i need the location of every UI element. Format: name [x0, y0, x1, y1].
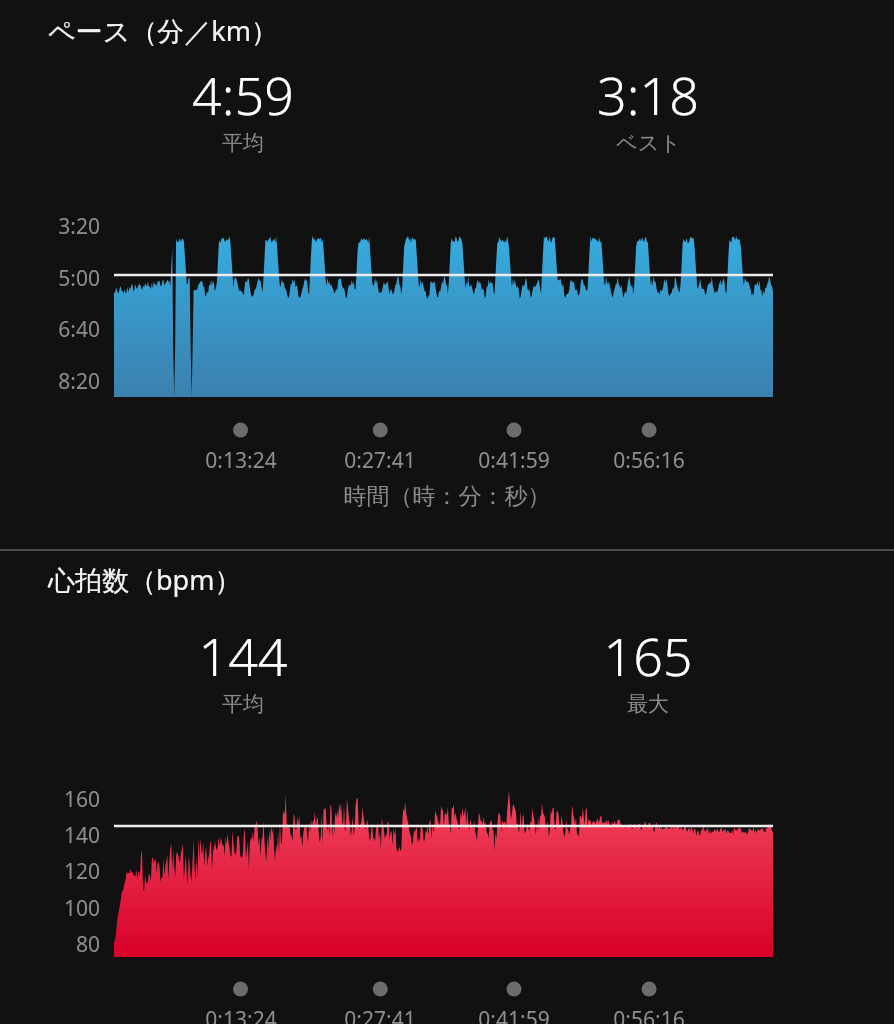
staticText: 0:13:24: [171, 446, 311, 475]
staticText: 心拍数（bpm）: [48, 561, 242, 598]
staticText: 8:20: [24, 367, 100, 396]
button[interactable]: 3:18: [558, 59, 738, 156]
staticText: ペース（分／km）: [48, 12, 278, 49]
staticText: 0:27:41: [310, 446, 450, 475]
staticText: 160: [24, 785, 100, 814]
staticText: 0:56:16: [579, 446, 719, 475]
staticText: 時間（時：分：秒）: [0, 482, 894, 511]
staticText: 0:13:24: [171, 1005, 311, 1024]
staticText: 100: [24, 894, 100, 923]
staticText: 4:59: [192, 59, 294, 130]
staticText: 0:41:59: [444, 446, 584, 475]
button[interactable]: 165: [558, 620, 738, 717]
button[interactable]: 4:59: [153, 59, 333, 156]
staticText: 165: [603, 620, 693, 691]
staticText: 0:56:16: [579, 1005, 719, 1024]
staticText: 140: [24, 821, 100, 850]
staticText: 5:00: [24, 264, 100, 293]
staticText: 3:20: [24, 212, 100, 241]
staticText: 最大: [627, 691, 669, 717]
staticText: ベスト: [616, 130, 681, 156]
staticText: 0:41:59: [444, 1005, 584, 1024]
staticText: 平均: [222, 130, 264, 156]
staticText: 144: [198, 620, 288, 691]
staticText: 0:27:41: [310, 1005, 450, 1024]
staticText: 3:18: [597, 59, 699, 130]
staticText: 平均: [222, 691, 264, 717]
button[interactable]: 心拍数（bpm）: [0, 551, 894, 1024]
staticText: 6:40: [24, 315, 100, 344]
staticText: 120: [24, 857, 100, 886]
staticText: 80: [24, 930, 100, 959]
button[interactable]: ペース（分／km）: [0, 0, 894, 549]
button[interactable]: 144: [153, 620, 333, 717]
